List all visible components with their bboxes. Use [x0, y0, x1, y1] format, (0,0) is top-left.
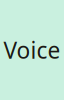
staticText: Voice	[3, 35, 60, 65]
